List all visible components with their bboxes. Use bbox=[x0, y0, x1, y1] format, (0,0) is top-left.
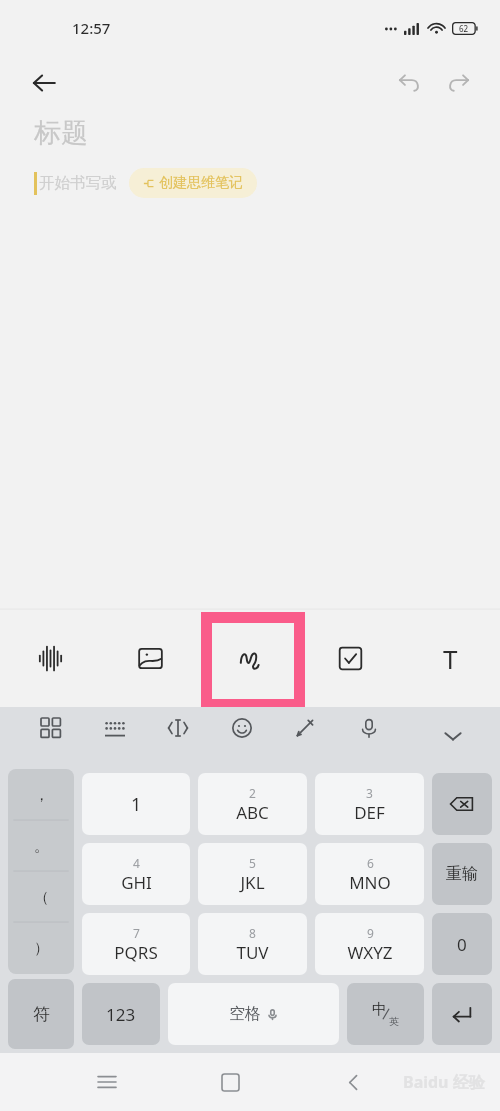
button[interactable]: Handwriting bbox=[200, 609, 300, 707]
button[interactable]: 符 bbox=[8, 979, 74, 1049]
staticText: DEF bbox=[354, 801, 385, 824]
button[interactable]: Hide keyboard bbox=[432, 715, 474, 757]
button[interactable]: Backspace bbox=[432, 773, 492, 835]
button[interactable]: 。 bbox=[8, 821, 74, 872]
button[interactable]: 6 bbox=[315, 843, 424, 905]
button[interactable]: Handwrite bbox=[284, 707, 326, 749]
staticText: 中 bbox=[372, 1000, 387, 1019]
staticText: （ bbox=[34, 888, 49, 907]
staticText: TUV bbox=[236, 941, 269, 964]
staticText: MNO bbox=[349, 871, 391, 894]
button[interactable]: 2 bbox=[198, 773, 307, 835]
staticText: 6 bbox=[367, 855, 374, 871]
button[interactable]: 1 bbox=[82, 773, 190, 835]
staticText: 0 bbox=[457, 933, 467, 956]
button[interactable]: 9 bbox=[315, 913, 424, 975]
staticText: 重输 bbox=[446, 864, 478, 884]
staticText: 开始书写或 bbox=[39, 173, 117, 193]
staticText: 创建思维笔记 bbox=[159, 174, 243, 192]
staticText: PQRS bbox=[114, 941, 158, 964]
staticText: 62 bbox=[459, 23, 469, 34]
staticText: 3 bbox=[366, 785, 373, 801]
button[interactable]: Recents bbox=[84, 1059, 130, 1105]
staticText: ） bbox=[34, 939, 49, 958]
staticText: 8 bbox=[249, 925, 256, 941]
button[interactable]: Voice input bbox=[348, 707, 390, 749]
staticText: 英 bbox=[389, 1015, 399, 1028]
staticText: 12:57 bbox=[72, 18, 111, 38]
staticText: 2 bbox=[249, 785, 256, 801]
staticText: 。 bbox=[34, 837, 49, 856]
button[interactable]: 7 bbox=[82, 913, 190, 975]
staticText: 9 bbox=[367, 925, 374, 941]
button[interactable]: 123 bbox=[82, 983, 160, 1045]
button[interactable]: ， bbox=[8, 769, 74, 821]
button[interactable]: Cursor bbox=[157, 707, 199, 749]
button[interactable]: Redo bbox=[436, 60, 482, 106]
button[interactable]: 重输 bbox=[432, 843, 492, 905]
button[interactable]: ） bbox=[8, 923, 74, 974]
staticText: 符 bbox=[33, 1004, 50, 1025]
button[interactable]: Back bbox=[330, 1059, 376, 1105]
staticText: 4 bbox=[133, 855, 140, 871]
button[interactable]: 8 bbox=[198, 913, 307, 975]
button[interactable]: Keyboard layout bbox=[94, 707, 136, 749]
button[interactable]: 5 bbox=[198, 843, 307, 905]
button[interactable]: Enter bbox=[432, 983, 492, 1045]
button[interactable]: 0 bbox=[432, 913, 492, 975]
staticText: 1 bbox=[131, 792, 142, 817]
staticText: WXYZ bbox=[347, 941, 393, 964]
staticText: 空格 bbox=[229, 1004, 261, 1024]
staticText: T bbox=[443, 641, 458, 676]
staticText: JKL bbox=[240, 871, 265, 894]
staticText: ABC bbox=[236, 801, 269, 824]
button[interactable]: 创建思维笔记 bbox=[129, 168, 257, 198]
button[interactable]: Home bbox=[207, 1059, 253, 1105]
button[interactable]: Back bbox=[20, 59, 68, 107]
button[interactable]: Checklist bbox=[300, 609, 400, 707]
staticText: ， bbox=[34, 786, 49, 805]
button[interactable]: Image bbox=[100, 609, 200, 707]
button[interactable]: 标题 bbox=[34, 116, 88, 150]
button[interactable]: Undo bbox=[386, 60, 432, 106]
staticText: GHI bbox=[121, 871, 152, 894]
button[interactable]: Emoji bbox=[221, 707, 263, 749]
button[interactable]: 3 bbox=[315, 773, 424, 835]
staticText: Baidu 经验 bbox=[403, 1071, 485, 1093]
staticText: 123 bbox=[106, 1003, 136, 1026]
button[interactable]: Apps bbox=[30, 707, 72, 749]
button[interactable]: 4 bbox=[82, 843, 190, 905]
staticText: 5 bbox=[249, 855, 256, 871]
button[interactable]: 空格 bbox=[168, 983, 339, 1045]
button[interactable]: （ bbox=[8, 872, 74, 923]
button[interactable]: 中 bbox=[347, 983, 424, 1045]
button[interactable]: Audio bbox=[0, 609, 100, 707]
button[interactable]: Text style bbox=[400, 609, 500, 707]
staticText: 7 bbox=[133, 925, 140, 941]
